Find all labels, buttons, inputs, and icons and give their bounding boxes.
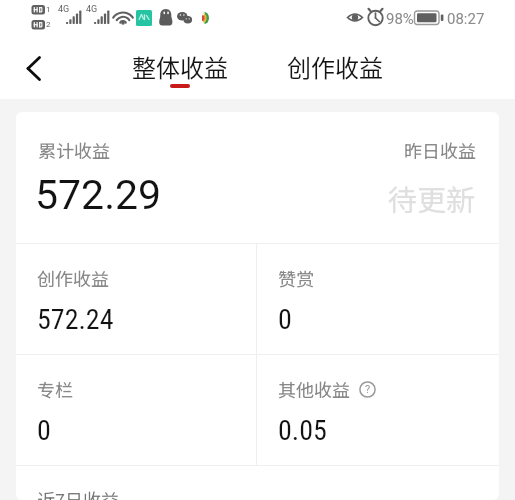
staticText: 累计收益 bbox=[38, 137, 110, 163]
staticText: 98% bbox=[386, 10, 414, 28]
staticText: 整体收益 bbox=[132, 49, 228, 84]
staticText: 572.29 bbox=[35, 171, 162, 219]
button[interactable]: 说明 bbox=[359, 381, 376, 398]
staticText: 572.24 bbox=[37, 303, 114, 336]
staticText: 昨日收益 bbox=[404, 137, 476, 163]
staticText: 0.05 bbox=[278, 414, 327, 447]
staticText: 其他收益 bbox=[278, 376, 350, 402]
staticText: 4G bbox=[58, 4, 70, 15]
staticText: 1 bbox=[46, 5, 51, 14]
button[interactable]: 返回 bbox=[12, 48, 52, 88]
button[interactable]: 其他收益 bbox=[257, 355, 499, 465]
staticText: 2 bbox=[46, 20, 51, 29]
button[interactable]: 创作收益 bbox=[287, 49, 383, 84]
staticText: ? bbox=[365, 383, 371, 396]
staticText: 0 bbox=[37, 414, 51, 447]
staticText: 4G bbox=[86, 4, 98, 15]
button[interactable]: 赞赏 bbox=[257, 244, 499, 354]
staticText: 08:27 bbox=[447, 10, 485, 28]
staticText: 0 bbox=[278, 303, 292, 336]
button[interactable]: 专栏 bbox=[16, 355, 256, 465]
button[interactable]: 创作收益 bbox=[16, 244, 256, 354]
button[interactable]: 整体收益 bbox=[132, 49, 228, 88]
staticText: 待更新 bbox=[388, 177, 476, 219]
staticText: 赞赏 bbox=[278, 265, 314, 291]
staticText: 近7日收益 bbox=[37, 486, 119, 500]
staticText: 创作收益 bbox=[37, 265, 109, 291]
staticText: 创作收益 bbox=[287, 49, 383, 84]
staticText: 专栏 bbox=[37, 376, 73, 402]
